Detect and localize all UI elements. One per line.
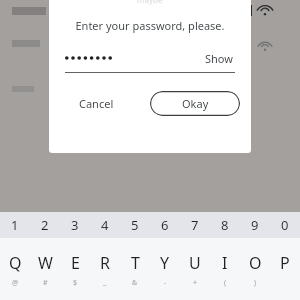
staticText: W: [38, 252, 53, 274]
button[interactable]: 7: [180, 212, 210, 238]
button[interactable]: T: [120, 238, 150, 300]
staticText: Show: [205, 51, 233, 66]
staticText: 0: [281, 216, 289, 234]
button[interactable]: 0: [270, 212, 300, 238]
staticText: 7: [191, 216, 199, 234]
button[interactable]: 1: [0, 212, 30, 238]
staticText: +: [193, 278, 198, 288]
button[interactable]: U: [180, 238, 210, 300]
button[interactable]: 4: [90, 212, 120, 238]
button[interactable]: 5: [120, 212, 150, 238]
staticText: Y: [160, 252, 170, 274]
staticText: 3: [71, 216, 79, 234]
staticText: (: [224, 278, 227, 288]
staticText: 1: [11, 216, 19, 234]
staticText: maybe: [137, 0, 163, 5]
button[interactable]: 8: [210, 212, 240, 238]
button[interactable]: 2: [30, 212, 60, 238]
button[interactable]: I: [210, 238, 240, 300]
staticText: #: [43, 278, 48, 288]
staticText: Enter your password, please.: [75, 18, 225, 33]
staticText: ): [254, 278, 257, 288]
staticText: $: [73, 278, 78, 288]
button[interactable]: R: [90, 238, 120, 300]
staticText: 4: [101, 216, 109, 234]
staticText: I: [222, 252, 228, 274]
staticText: 9: [251, 216, 259, 234]
button[interactable]: Show: [203, 47, 235, 70]
staticText: P: [280, 252, 290, 274]
staticText: &: [132, 278, 138, 288]
staticText: R: [100, 252, 110, 274]
button[interactable]: 3: [60, 212, 90, 238]
button[interactable]: O: [240, 238, 270, 300]
button[interactable]: 9: [240, 212, 270, 238]
staticText: O: [249, 252, 262, 274]
button[interactable]: Okay: [150, 91, 240, 116]
staticText: Q: [9, 252, 22, 274]
button[interactable]: P: [270, 238, 300, 300]
staticText: -: [164, 278, 167, 288]
button[interactable]: Y: [150, 238, 180, 300]
staticText: T: [131, 252, 140, 274]
button[interactable]: Cancel: [71, 90, 122, 117]
button[interactable]: W: [30, 238, 60, 300]
staticText: 8: [221, 216, 229, 234]
staticText: 2: [41, 216, 49, 234]
staticText: 6: [161, 216, 169, 234]
staticText: U: [189, 252, 201, 274]
button[interactable]: 6: [150, 212, 180, 238]
staticText: _: [103, 278, 107, 288]
button[interactable]: E: [60, 238, 90, 300]
staticText: E: [71, 252, 80, 274]
staticText: 5: [131, 216, 139, 234]
staticText: Cancel: [79, 96, 114, 111]
staticText: @: [12, 278, 19, 288]
button[interactable]: Q: [0, 238, 30, 300]
staticText: Okay: [182, 96, 209, 111]
